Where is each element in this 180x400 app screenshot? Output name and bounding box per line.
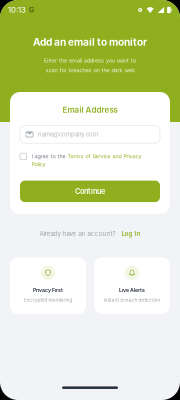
staticText: Encrypted monitoring: [23, 297, 72, 303]
button[interactable]: Privacy First: [10, 257, 86, 314]
staticText: Terms of Service and Privacy: [67, 153, 141, 160]
staticText: Privacy First: [33, 287, 63, 293]
staticText: name@company.com: [38, 131, 98, 138]
staticText: Instant breach detection: [103, 297, 160, 303]
staticText: Enter the email address you want to: [44, 57, 136, 64]
button[interactable]: Log In: [121, 230, 140, 237]
staticText: Log In: [121, 230, 140, 237]
staticText: I agree to the: [31, 153, 67, 160]
button[interactable]: Live Alerts: [94, 257, 170, 314]
staticText: 10:13: [8, 5, 26, 14]
staticText: G: [29, 6, 34, 14]
staticText: Email Address: [62, 105, 117, 115]
staticText: Already have an account?: [39, 230, 115, 237]
button[interactable]: I agree to the: [20, 153, 160, 168]
staticText: Add an email to monitor: [33, 36, 147, 48]
button[interactable]: Continue: [20, 181, 160, 202]
staticText: scan for breaches on the dark web: [45, 67, 134, 73]
staticText: Continue: [75, 187, 105, 196]
staticText: Live Alerts: [119, 287, 145, 293]
staticText: Policy: [31, 161, 45, 168]
